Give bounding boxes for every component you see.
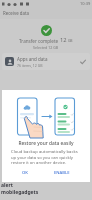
staticText: Receive data	[3, 10, 29, 16]
staticText: 10:39	[80, 1, 91, 6]
staticText: Restore your data easily	[2, 140, 90, 147]
staticText: Apps and data	[17, 56, 48, 62]
staticText: Selected 12 GB	[33, 45, 59, 50]
staticText: OK	[22, 170, 28, 176]
button[interactable]: OK	[18, 168, 32, 178]
staticText: Transfer complete	[19, 38, 60, 44]
staticText: alert	[1, 182, 13, 189]
button[interactable]: ENABLE	[50, 168, 74, 178]
staticText: mobilegadgets	[1, 189, 39, 196]
staticText: ENABLE	[54, 170, 70, 176]
staticText: GB	[67, 38, 73, 43]
staticText: 12	[60, 36, 67, 44]
staticText: 76 items, 12 GB	[17, 63, 43, 68]
button[interactable]: Apps and data	[2, 53, 90, 70]
staticText: Cloud backup automatically backs up your…	[11, 149, 82, 165]
